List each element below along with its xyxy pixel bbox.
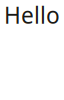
staticText: Hello — [4, 0, 60, 30]
